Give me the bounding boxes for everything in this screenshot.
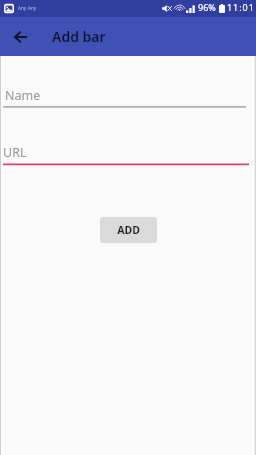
staticText: 96% [198,1,216,13]
button[interactable]: Name [3,80,246,110]
button[interactable]: URL [3,137,249,167]
staticText: Name [5,87,41,104]
staticText: ADD [117,223,140,237]
staticText: URL [3,144,27,161]
staticText: Any [28,5,37,11]
button[interactable]: Navigate up [8,25,32,49]
button[interactable]: ADD [100,217,157,243]
staticText: Any [18,5,27,11]
staticText: Add bar [52,27,106,46]
staticText: 11:01 [227,1,255,13]
